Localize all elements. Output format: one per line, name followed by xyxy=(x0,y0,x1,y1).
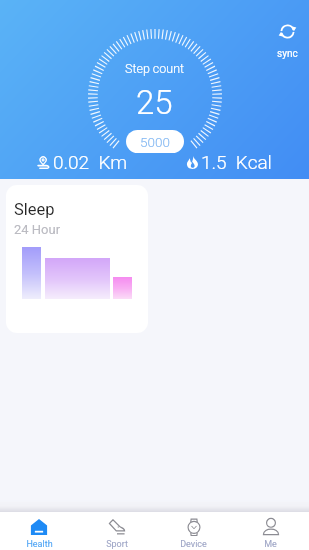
button[interactable]: Me xyxy=(232,512,309,550)
staticText: sync xyxy=(277,48,298,60)
staticText: Step count xyxy=(125,61,185,76)
staticText: 24 Hour xyxy=(14,222,61,237)
button[interactable]: Sync xyxy=(271,19,304,64)
button[interactable]: Device xyxy=(155,512,232,550)
staticText: Me xyxy=(264,539,277,550)
staticText: 25 xyxy=(136,83,173,122)
staticText: Sport xyxy=(106,539,128,550)
staticText: 5000 xyxy=(140,134,170,150)
staticText: 0.02 Km xyxy=(53,151,128,173)
button[interactable]: 5000 xyxy=(126,130,184,153)
staticText: 1.5 Kcal xyxy=(201,151,272,173)
staticText: Health xyxy=(26,539,53,550)
button[interactable]: Sleep xyxy=(6,185,148,333)
button[interactable]: Health xyxy=(0,512,78,550)
staticText: Device xyxy=(180,539,207,550)
staticText: Sleep xyxy=(14,200,55,219)
button[interactable]: Sport xyxy=(78,512,155,550)
